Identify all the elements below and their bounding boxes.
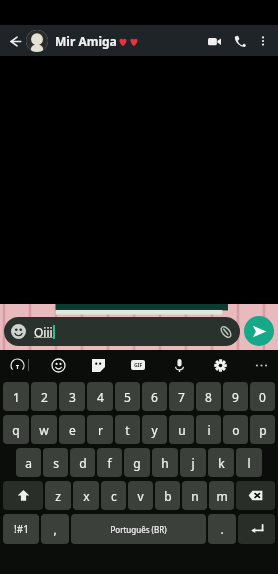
staticText: 3 xyxy=(69,389,76,405)
staticText: , xyxy=(53,521,57,537)
button[interactable]: GIF xyxy=(127,354,149,376)
button[interactable]: 9 xyxy=(223,382,248,411)
button[interactable]: 1 xyxy=(3,382,29,411)
staticText: 5 xyxy=(124,389,131,405)
button[interactable]: Back xyxy=(5,31,25,51)
button[interactable]: s xyxy=(43,448,68,477)
button[interactable]: More options xyxy=(253,31,273,51)
button[interactable]: 2 xyxy=(31,382,57,411)
staticText: Oiii xyxy=(34,324,53,340)
button[interactable]: q xyxy=(3,415,29,444)
button[interactable]: Enter xyxy=(238,514,275,544)
button[interactable]: Mir Amiga xyxy=(26,30,201,52)
button[interactable]: Emoji xyxy=(4,317,240,346)
staticText: GIF xyxy=(134,362,143,369)
button[interactable]: o xyxy=(223,415,248,444)
button[interactable]: d xyxy=(70,448,95,477)
staticText: z xyxy=(55,488,61,504)
button[interactable]: 7 xyxy=(169,382,194,411)
button[interactable]: e xyxy=(59,415,85,444)
staticText: 7 xyxy=(178,389,185,405)
button[interactable]: 4 xyxy=(87,382,113,411)
staticText: s xyxy=(53,455,59,471)
staticText: m xyxy=(216,488,228,504)
button[interactable]: Voice call xyxy=(227,28,253,54)
button[interactable]: Emoji xyxy=(10,323,27,340)
staticText: r xyxy=(98,422,103,438)
button[interactable]: k xyxy=(208,448,234,477)
button[interactable]: r xyxy=(87,415,113,444)
button[interactable]: Video call xyxy=(201,28,227,54)
button[interactable]: h xyxy=(152,448,178,477)
staticText: o xyxy=(232,422,240,438)
button[interactable]: Voice input xyxy=(168,354,190,376)
button[interactable]: 0 xyxy=(250,382,275,411)
button[interactable]: , xyxy=(41,514,69,544)
button[interactable]: x xyxy=(73,481,99,510)
button[interactable]: n xyxy=(182,481,207,510)
button[interactable]: Send xyxy=(244,316,274,346)
staticText: c xyxy=(111,488,117,504)
staticText: e xyxy=(69,422,76,438)
button[interactable]: Settings xyxy=(209,354,231,376)
staticText: Português (BR) xyxy=(110,524,167,535)
staticText: 2 xyxy=(41,389,48,405)
staticText: g xyxy=(133,455,141,471)
button[interactable]: g xyxy=(124,448,150,477)
staticText: l xyxy=(247,455,251,471)
button[interactable]: j xyxy=(180,448,206,477)
button[interactable]: f xyxy=(97,448,122,477)
button[interactable]: l xyxy=(236,448,262,477)
staticText: d xyxy=(79,455,87,471)
staticText: x xyxy=(83,488,90,504)
staticText: n xyxy=(191,488,199,504)
button[interactable]: Backspace xyxy=(236,481,275,510)
staticText: q xyxy=(12,422,20,438)
staticText: w xyxy=(39,422,49,438)
staticText: Mir Amiga xyxy=(55,33,117,49)
button[interactable]: Attach xyxy=(217,323,234,340)
staticText: !#1 xyxy=(14,522,29,536)
button[interactable]: c xyxy=(101,481,126,510)
button[interactable]: 6 xyxy=(142,382,167,411)
staticText: . xyxy=(220,521,224,537)
staticText: j xyxy=(191,455,195,471)
button[interactable]: w xyxy=(31,415,57,444)
staticText: a xyxy=(25,455,32,471)
button[interactable]: !#1 xyxy=(3,514,39,544)
button[interactable]: Stickers xyxy=(87,354,109,376)
button[interactable]: u xyxy=(169,415,194,444)
button[interactable]: z xyxy=(45,481,71,510)
staticText: y xyxy=(151,422,158,438)
button[interactable]: Emoji xyxy=(47,354,69,376)
button[interactable]: 8 xyxy=(196,382,221,411)
button[interactable]: 5 xyxy=(115,382,140,411)
button[interactable]: b xyxy=(155,481,180,510)
button[interactable]: y xyxy=(142,415,167,444)
button[interactable]: More xyxy=(250,354,272,376)
staticText: u xyxy=(178,422,186,438)
staticText: 4 xyxy=(97,389,104,405)
staticText: 1 xyxy=(13,389,20,405)
button[interactable]: p xyxy=(250,415,275,444)
staticText: 0 xyxy=(259,389,266,405)
button[interactable]: a xyxy=(16,448,41,477)
button[interactable]: v xyxy=(128,481,153,510)
button[interactable]: m xyxy=(209,481,234,510)
staticText: v xyxy=(137,488,144,504)
staticText: p xyxy=(259,422,267,438)
button[interactable]: 3 xyxy=(59,382,85,411)
staticText: 8 xyxy=(205,389,212,405)
staticText: i xyxy=(207,422,211,438)
button[interactable]: t xyxy=(115,415,140,444)
staticText: b xyxy=(164,488,172,504)
button[interactable]: Shift xyxy=(3,481,43,510)
staticText: f xyxy=(107,455,112,471)
button[interactable]: . xyxy=(208,514,236,544)
button[interactable]: Português (BR) xyxy=(71,514,206,544)
staticText: 9 xyxy=(232,389,239,405)
staticText: 6 xyxy=(151,389,158,405)
button[interactable]: i xyxy=(196,415,221,444)
staticText: t xyxy=(125,422,130,438)
button[interactable]: Clipboard xyxy=(6,354,28,376)
